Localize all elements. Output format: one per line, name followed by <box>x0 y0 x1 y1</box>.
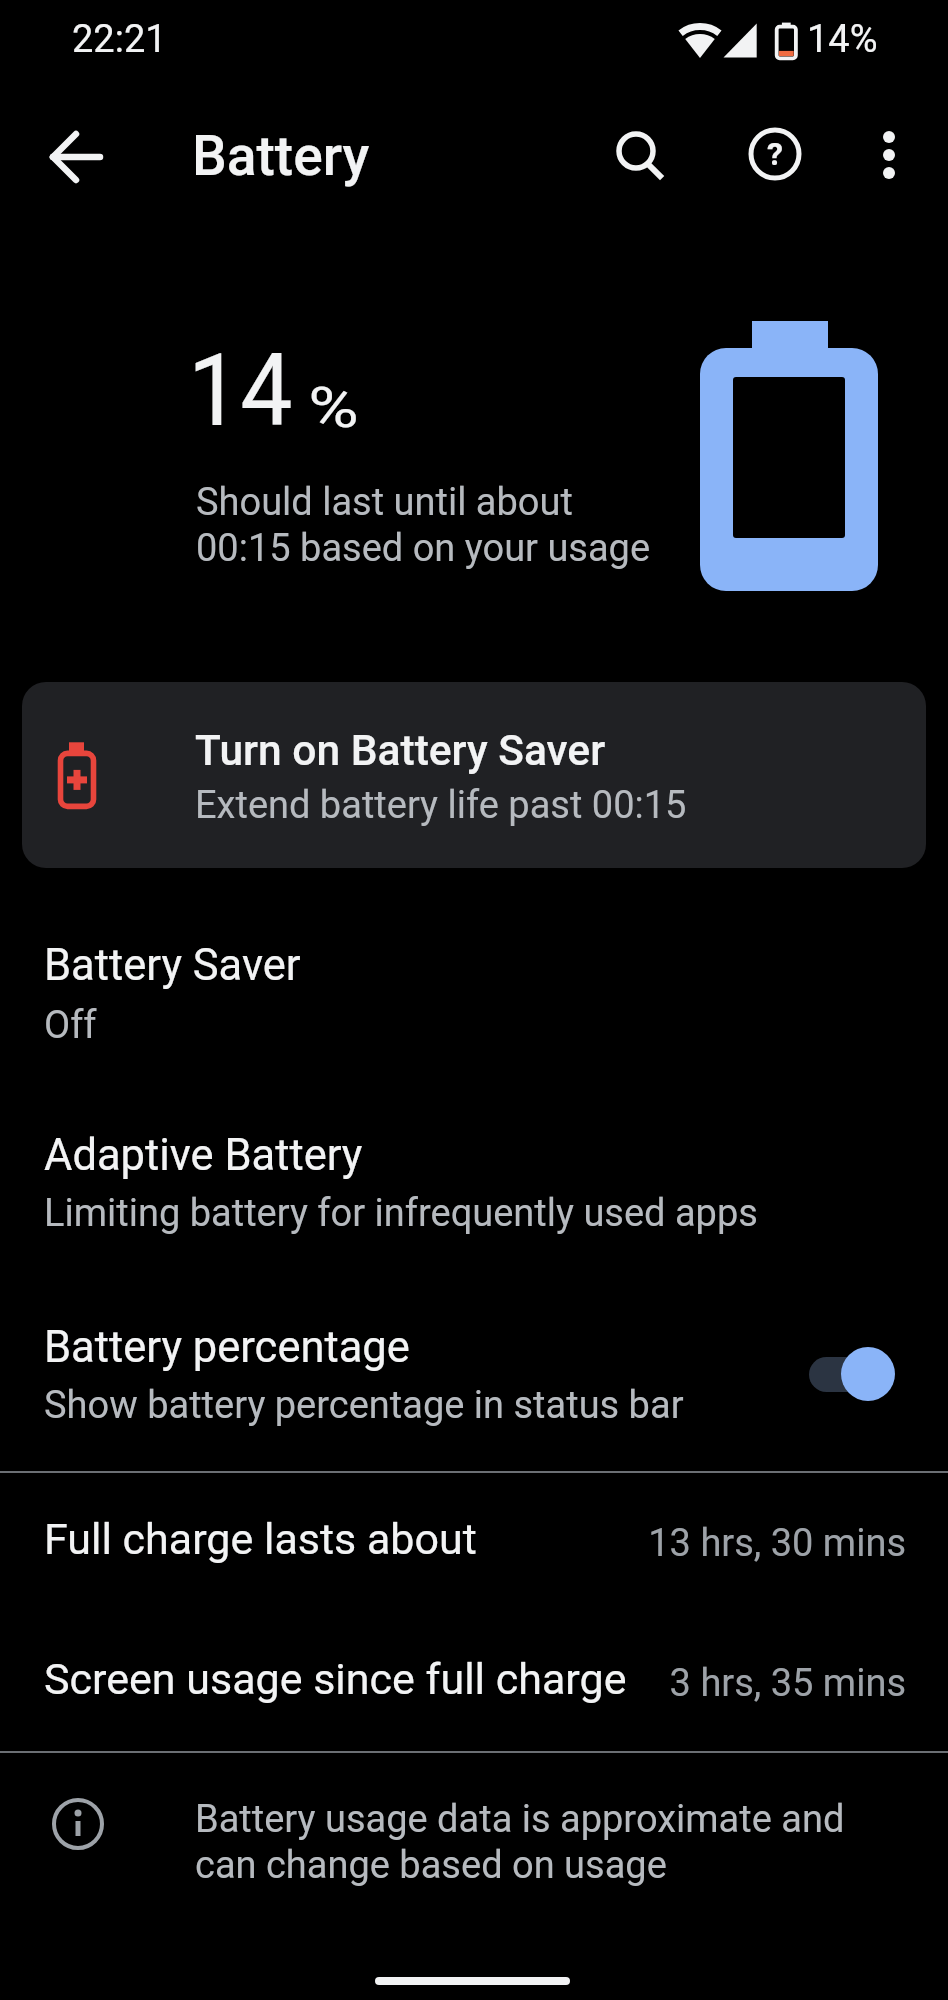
button[interactable] <box>610 127 670 187</box>
staticText: Turn on Battery Saver <box>195 726 606 776</box>
button[interactable] <box>860 124 916 180</box>
staticText: 14 <box>188 332 293 449</box>
button[interactable]: Turn on Battery Saver <box>22 682 926 868</box>
button[interactable]: ? <box>745 124 805 184</box>
button[interactable]: Adaptive Battery <box>0 1110 948 1260</box>
staticText: Should last until about 00:15 based on y… <box>196 480 651 571</box>
staticText: Off <box>44 1003 97 1048</box>
staticText: Screen usage since full charge <box>44 1654 627 1704</box>
staticText: Limiting battery for infrequently used a… <box>44 1191 758 1236</box>
staticText: 3 hrs, 35 mins <box>0 1661 906 1706</box>
button[interactable] <box>47 127 107 187</box>
staticText: Adaptive Battery <box>44 1130 363 1181</box>
staticText: ? <box>767 135 783 173</box>
staticText: 22:21 <box>72 17 167 62</box>
staticText: Battery Saver <box>44 940 301 991</box>
staticText: Extend battery life past 00:15 <box>195 783 687 828</box>
button[interactable]: Battery percentage <box>0 1302 948 1452</box>
staticText: Battery <box>192 124 370 188</box>
staticText: Battery usage data is approximate and ca… <box>195 1797 845 1887</box>
button[interactable]: Battery Saver <box>0 920 948 1070</box>
staticText: Battery percentage <box>44 1322 410 1373</box>
staticText: % <box>308 375 360 441</box>
staticText: Show battery percentage in status bar <box>44 1383 684 1428</box>
button[interactable]: Screen usage since full charge <box>0 1635 948 1755</box>
button[interactable]: Full charge lasts about <box>0 1495 948 1615</box>
staticText: Full charge lasts about <box>44 1514 477 1564</box>
staticText: 13 hrs, 30 mins <box>0 1521 906 1566</box>
button[interactable] <box>800 1340 905 1410</box>
staticText: 14% <box>807 17 878 62</box>
